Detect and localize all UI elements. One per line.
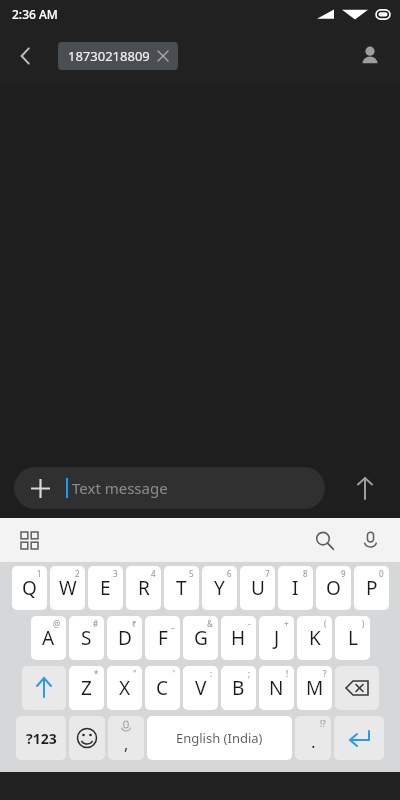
button[interactable]: 3 xyxy=(88,566,123,610)
button[interactable]: Voice input xyxy=(350,520,390,560)
staticText: !? xyxy=(320,718,326,729)
staticText: T xyxy=(176,575,187,601)
button[interactable]: & xyxy=(183,616,218,660)
staticText: & xyxy=(207,618,213,629)
button[interactable]: ?123 xyxy=(16,716,66,760)
staticText: ; xyxy=(248,668,251,679)
staticText: E xyxy=(100,575,111,601)
staticText: Q xyxy=(22,575,37,601)
staticText: 4 xyxy=(151,568,156,579)
staticText: L xyxy=(348,625,358,651)
button[interactable]: _ xyxy=(145,616,180,660)
staticText: P xyxy=(366,575,378,601)
button[interactable]: Back xyxy=(4,34,48,78)
staticText: D xyxy=(118,625,132,651)
staticText: X xyxy=(119,675,131,701)
button[interactable]: Send xyxy=(342,465,388,511)
staticText: 3 xyxy=(113,568,118,579)
button[interactable]: ) xyxy=(335,616,370,660)
button[interactable]: Backspace xyxy=(335,666,379,710)
button[interactable]: !? xyxy=(295,716,331,760)
button[interactable]: ( xyxy=(297,616,332,660)
staticText: ! xyxy=(286,668,289,679)
staticText: 2:36 AM xyxy=(12,6,58,22)
staticText: Y xyxy=(214,575,225,601)
staticText: * xyxy=(94,668,99,679)
staticText: H xyxy=(231,625,246,651)
button[interactable]: 2 xyxy=(50,566,85,610)
staticText: ( xyxy=(324,618,327,629)
button[interactable]: ? xyxy=(297,666,332,710)
staticText: B xyxy=(232,675,245,701)
button[interactable]: 1 xyxy=(12,566,47,610)
button[interactable]: Toolbox xyxy=(10,521,48,559)
button[interactable]: 5 xyxy=(164,566,199,610)
button[interactable]: Search xyxy=(304,520,344,560)
staticText: N xyxy=(269,675,284,701)
staticText: R xyxy=(138,575,150,601)
button[interactable]: Text message xyxy=(14,467,325,509)
staticText: ₹ xyxy=(132,618,137,629)
staticText: : xyxy=(210,668,213,679)
button[interactable]: + xyxy=(259,616,294,660)
button[interactable]: 18730218809 xyxy=(58,42,178,70)
staticText: " xyxy=(133,668,137,679)
button[interactable]: ' xyxy=(145,666,180,710)
staticText: ' xyxy=(173,668,175,679)
staticText: . xyxy=(311,730,316,753)
staticText: W xyxy=(59,575,77,601)
staticText: 18730218809 xyxy=(68,47,150,65)
staticText: G xyxy=(194,625,208,651)
button[interactable]: ₹ xyxy=(107,616,142,660)
staticText: - xyxy=(248,618,251,629)
staticText: ? xyxy=(323,668,327,679)
button[interactable]: 9 xyxy=(316,566,351,610)
staticText: @ xyxy=(53,618,61,629)
staticText: 5 xyxy=(189,568,194,579)
button[interactable]: * xyxy=(69,666,104,710)
staticText: , xyxy=(124,733,129,755)
staticText: U xyxy=(251,575,265,601)
button[interactable]: : xyxy=(183,666,218,710)
staticText: 7 xyxy=(265,568,270,579)
button[interactable]: @ xyxy=(31,616,66,660)
button[interactable]: 4 xyxy=(126,566,161,610)
button[interactable]: 0 xyxy=(354,566,389,610)
staticText: A xyxy=(42,625,55,651)
staticText: K xyxy=(309,625,321,651)
button[interactable]: 6 xyxy=(202,566,237,610)
staticText: + xyxy=(284,618,289,629)
staticText: English (India) xyxy=(176,729,263,747)
staticText: S xyxy=(81,625,92,651)
staticText: # xyxy=(93,618,99,629)
staticText: 6 xyxy=(227,568,232,579)
staticText: 2 xyxy=(75,568,80,579)
staticText: F xyxy=(158,625,168,651)
button[interactable]: " xyxy=(107,666,142,710)
staticText: _ xyxy=(171,618,175,629)
staticText: 0 xyxy=(379,568,384,579)
staticText: I xyxy=(292,575,299,601)
button[interactable]: English (India) xyxy=(147,716,292,760)
button[interactable]: - xyxy=(221,616,256,660)
button[interactable]: Contact details xyxy=(348,34,392,78)
staticText: J xyxy=(274,625,280,651)
button[interactable]: Enter xyxy=(334,716,384,760)
staticText: 8 xyxy=(303,568,308,579)
staticText: 9 xyxy=(341,568,346,579)
button[interactable]: 8 xyxy=(278,566,313,610)
staticText: 1 xyxy=(37,568,42,579)
button[interactable]: Emoji xyxy=(69,716,105,760)
staticText: M xyxy=(306,675,324,701)
button[interactable]: 7 xyxy=(240,566,275,610)
button[interactable]: ; xyxy=(221,666,256,710)
button[interactable]: Comma xyxy=(108,716,144,760)
staticText: Text message xyxy=(72,478,168,498)
staticText: C xyxy=(156,675,169,701)
button[interactable]: # xyxy=(69,616,104,660)
staticText: O xyxy=(326,575,341,601)
button[interactable]: ! xyxy=(259,666,294,710)
staticText: ?123 xyxy=(26,729,57,748)
button[interactable]: Shift xyxy=(22,666,66,710)
staticText: V xyxy=(195,675,207,701)
